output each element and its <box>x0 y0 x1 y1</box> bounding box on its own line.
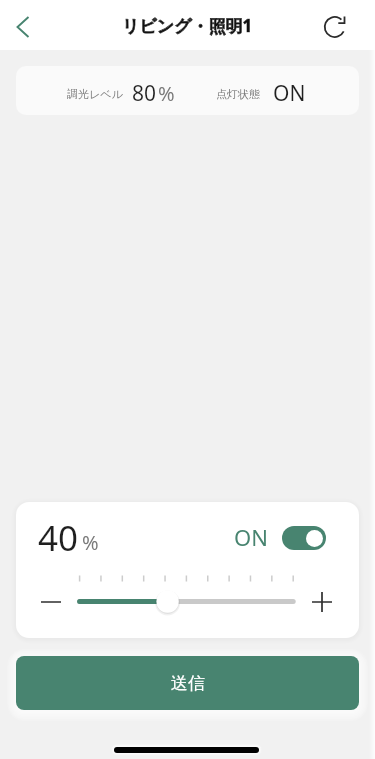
button[interactable]: 送信 <box>16 656 359 710</box>
staticText: % <box>158 80 175 107</box>
staticText: 80 <box>132 79 157 108</box>
staticText: リビング・照明1 <box>122 14 253 37</box>
button[interactable]: Decrease <box>33 584 69 620</box>
button[interactable]: Power toggle <box>282 526 326 550</box>
staticText: % <box>82 529 99 556</box>
staticText: 調光レベル <box>67 87 123 101</box>
staticText: ON <box>273 79 306 108</box>
staticText: 送信 <box>171 673 205 694</box>
staticText: ON <box>234 522 268 552</box>
staticText: 点灯状態 <box>216 87 260 101</box>
staticText: リビング・照明1 <box>122 14 253 37</box>
staticText: 40 <box>38 514 79 562</box>
button[interactable]: Refresh <box>315 7 355 47</box>
button[interactable]: Increase <box>304 584 340 620</box>
button[interactable]: Back <box>3 7 43 47</box>
